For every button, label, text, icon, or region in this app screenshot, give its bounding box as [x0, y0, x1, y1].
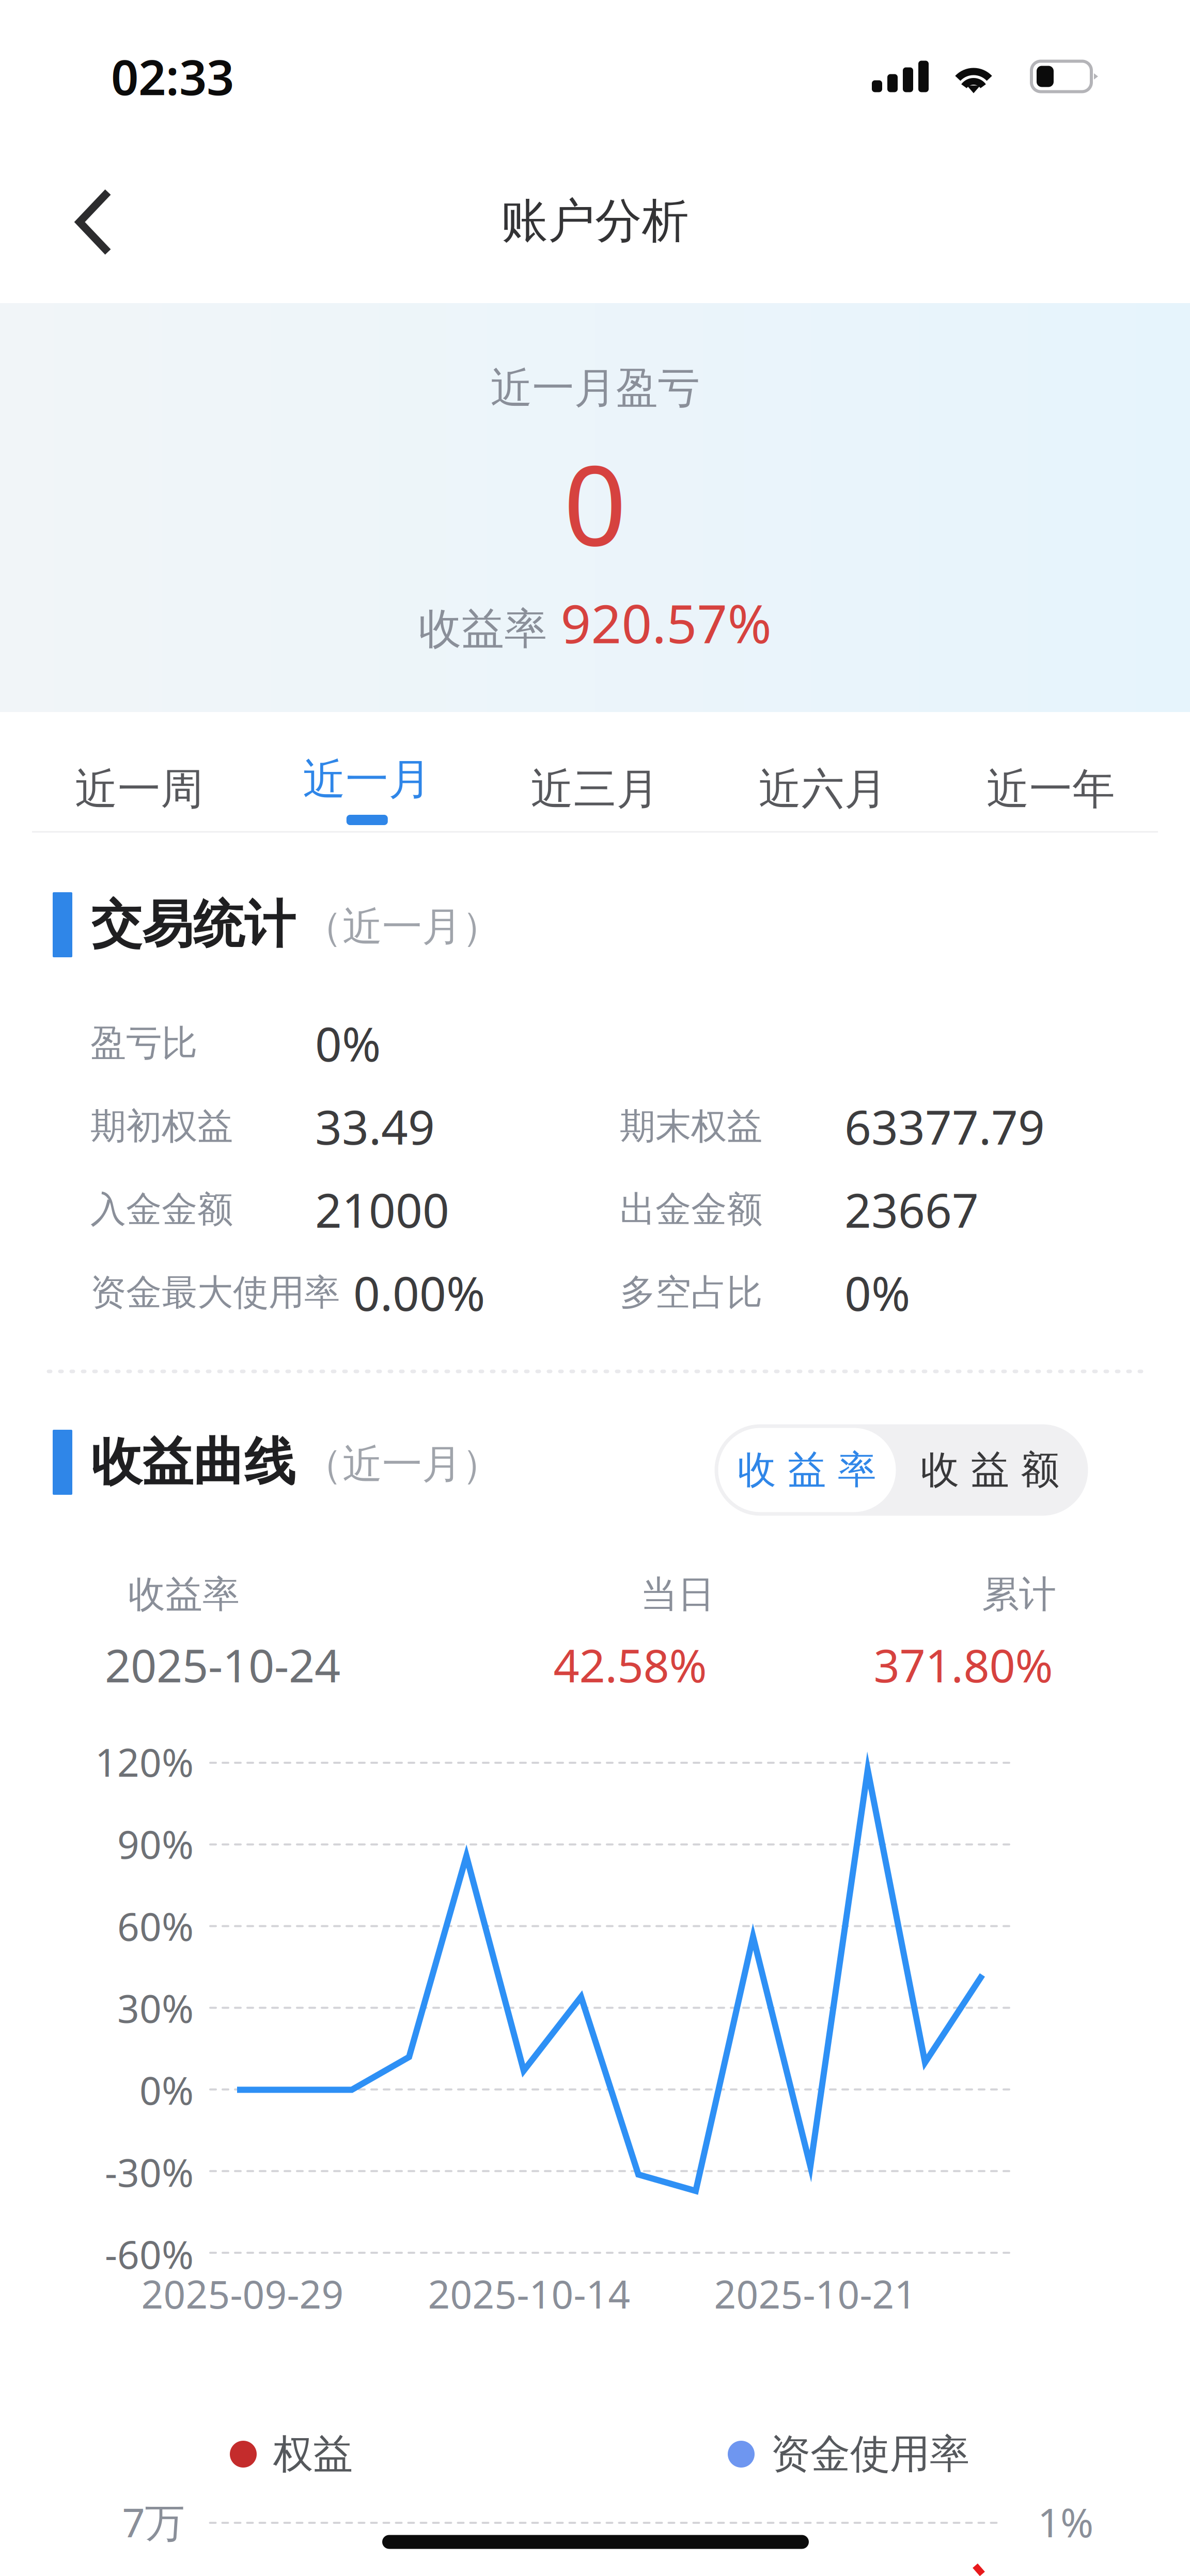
- staticText: 账户分析: [501, 192, 689, 250]
- staticText: 近三月: [531, 763, 659, 815]
- staticText: 收 益 额: [921, 1446, 1060, 1494]
- staticText: 近六月: [759, 763, 887, 815]
- staticText: 42.58%: [553, 1635, 707, 1695]
- staticText: -60%: [105, 2228, 194, 2279]
- staticText: 入金金额: [90, 1188, 233, 1232]
- staticText: （近一月）: [303, 1440, 502, 1489]
- button[interactable]: 近一月: [253, 735, 481, 833]
- staticText: 2025-10-14: [428, 2268, 630, 2319]
- staticText: 期末权益: [620, 1104, 762, 1148]
- staticText: 120%: [95, 1736, 194, 1787]
- staticText: 近一周: [75, 763, 204, 815]
- staticText: 多空占比: [620, 1271, 762, 1315]
- staticText: 收益率: [419, 603, 547, 655]
- staticText: 33.49: [315, 1095, 435, 1157]
- staticText: 资金最大使用率: [90, 1271, 340, 1315]
- staticText: 0: [563, 430, 627, 576]
- staticText: 近一年: [986, 763, 1115, 815]
- staticText: 0.00%: [353, 1262, 485, 1324]
- staticText: 371.80%: [874, 1635, 1053, 1695]
- staticText: 23667: [844, 1178, 979, 1241]
- staticText: 0%: [315, 1012, 381, 1074]
- button[interactable]: 近一年: [937, 735, 1165, 833]
- staticText: 02:33: [111, 44, 234, 108]
- staticText: 收益率: [128, 1572, 240, 1617]
- button[interactable]: 收 益 率: [718, 1428, 896, 1512]
- staticText: 收益曲线: [91, 1431, 295, 1494]
- staticText: 交易统计: [91, 893, 295, 956]
- staticText: 63377.79: [844, 1095, 1045, 1157]
- button[interactable]: 收 益 额: [896, 1428, 1084, 1512]
- staticText: 当日: [640, 1572, 715, 1617]
- staticText: 60%: [117, 1900, 194, 1951]
- staticText: -30%: [105, 2146, 194, 2197]
- staticText: 1%: [1038, 2495, 1093, 2548]
- staticText: 2025-09-29: [141, 2268, 344, 2319]
- button[interactable]: Back: [41, 165, 147, 279]
- staticText: 累计: [982, 1572, 1056, 1617]
- staticText: 盈亏比: [90, 1021, 197, 1065]
- staticText: 权益: [273, 2430, 353, 2479]
- staticText: 0%: [844, 1262, 910, 1324]
- staticText: 近一月盈亏: [490, 363, 700, 414]
- staticText: 920.57%: [561, 587, 771, 658]
- staticText: 21000: [315, 1178, 449, 1241]
- staticText: 30%: [117, 1982, 194, 2033]
- staticText: 收 益 率: [738, 1446, 876, 1494]
- staticText: 2025-10-24: [105, 1635, 340, 1695]
- staticText: 2025-10-21: [714, 2268, 917, 2319]
- staticText: 90%: [117, 1818, 194, 1869]
- staticText: 0%: [139, 2064, 194, 2115]
- staticText: 期初权益: [90, 1104, 233, 1148]
- staticText: 资金使用率: [771, 2430, 969, 2479]
- button[interactable]: 近三月: [481, 735, 709, 833]
- button[interactable]: 近一周: [25, 735, 253, 833]
- staticText: 近一月: [303, 753, 431, 806]
- staticText: （近一月）: [303, 902, 502, 951]
- button[interactable]: 近六月: [709, 735, 937, 833]
- staticText: 出金金额: [620, 1188, 762, 1232]
- staticText: 7万: [122, 2495, 185, 2548]
